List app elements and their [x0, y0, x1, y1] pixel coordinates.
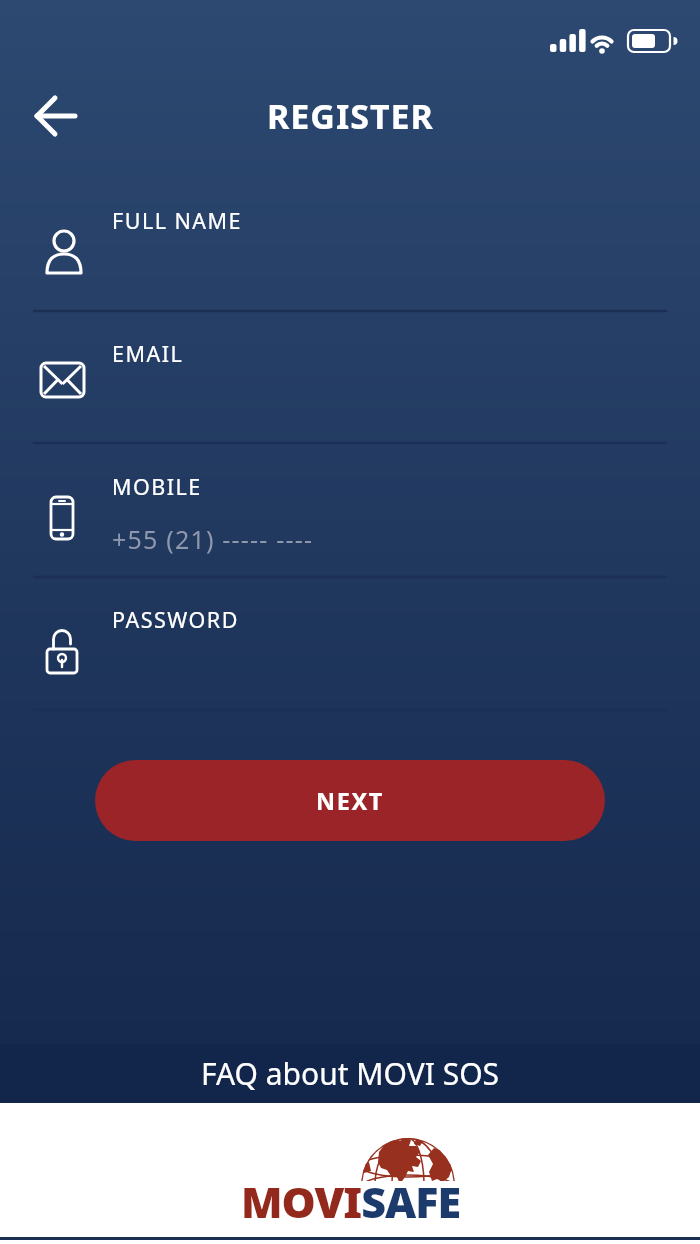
- staticText: REGISTER: [267, 93, 434, 139]
- staticText: +55 (21) ----- ----: [112, 522, 314, 556]
- button[interactable]: [0, 313, 700, 443]
- staticText: PASSWORD: [112, 605, 239, 634]
- button[interactable]: FAQ about MOVI SOS: [0, 1044, 700, 1103]
- staticText: NEXT: [316, 785, 384, 817]
- staticText: FAQ about MOVI SOS: [201, 1053, 500, 1094]
- button[interactable]: [0, 180, 700, 311]
- button[interactable]: [20, 90, 92, 144]
- staticText: MOVISAFE: [241, 1172, 460, 1231]
- button[interactable]: NEXT: [95, 760, 605, 841]
- staticText: FULL NAME: [112, 206, 243, 235]
- button[interactable]: [0, 446, 700, 577]
- button[interactable]: [0, 580, 700, 710]
- staticText: MOBILE: [112, 472, 202, 501]
- staticText: EMAIL: [112, 339, 184, 368]
